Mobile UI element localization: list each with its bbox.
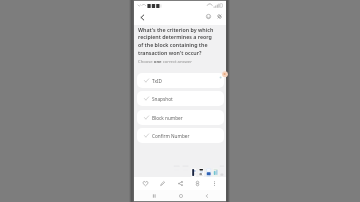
button[interactable]: TxID: [137, 73, 224, 88]
button[interactable]: Confirm Number: [137, 128, 224, 143]
staticText: Block number: [152, 115, 183, 121]
button[interactable]: Like: [139, 177, 152, 190]
button[interactable]: Home: [175, 190, 186, 201]
button[interactable]: Save: [191, 177, 204, 190]
button[interactable]: Edit: [156, 177, 169, 190]
staticText: What's the criterion by which recipient …: [138, 26, 218, 56]
staticText: TxID: [152, 78, 163, 84]
staticText: Confirm Number: [152, 133, 190, 139]
button[interactable]: Back: [136, 11, 148, 23]
button[interactable]: Share: [174, 177, 187, 190]
button[interactable]: Feedback: [203, 11, 214, 22]
button[interactable]: Block number: [137, 110, 224, 125]
button[interactable]: Snapshot: [137, 91, 224, 106]
staticText: Snapshot: [152, 96, 173, 102]
button[interactable]: Recent apps: [148, 190, 159, 201]
button[interactable]: Back: [201, 190, 212, 201]
button[interactable]: More options: [208, 177, 221, 190]
button[interactable]: Settings: [214, 11, 225, 22]
staticText: Choose one correct answer: [138, 59, 192, 65]
